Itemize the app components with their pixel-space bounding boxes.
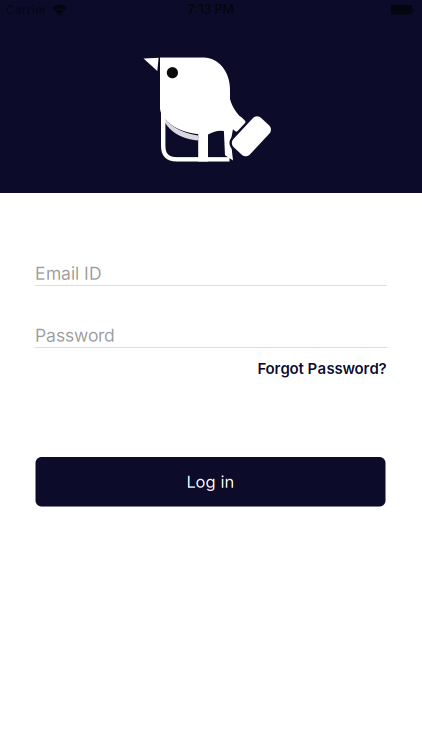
button[interactable]: Log in — [35, 457, 385, 506]
staticText: Password — [35, 325, 115, 346]
button[interactable]: Email ID — [35, 262, 387, 286]
button[interactable]: Forgot Password? — [257, 359, 386, 377]
staticText: Email ID — [35, 263, 102, 284]
staticText: Carrier — [6, 3, 47, 17]
staticText: Log in — [186, 472, 234, 492]
staticText: Forgot Password? — [257, 359, 386, 377]
staticText: 7:13 PM — [187, 2, 234, 17]
button[interactable]: Password — [35, 324, 387, 348]
